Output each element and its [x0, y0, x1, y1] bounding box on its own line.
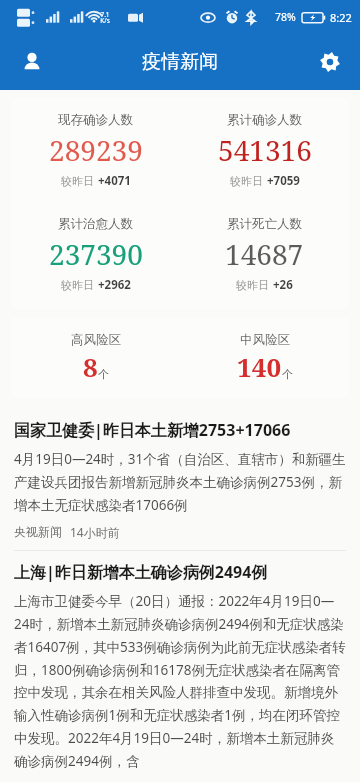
staticText: 14687: [225, 235, 304, 273]
staticText: 个: [98, 367, 109, 381]
staticText: +2962: [98, 277, 131, 293]
button[interactable]: 国家卫健委|昨日本土新增2753+17066: [0, 409, 360, 550]
staticText: 237390: [49, 235, 143, 273]
button[interactable]: 现存确诊人数: [11, 98, 349, 309]
staticText: +26: [273, 277, 293, 293]
staticText: 国家卫健委|昨日本土新增2753+17066: [14, 419, 291, 441]
staticText: 上海市卫健委今早（20日）通报：2022年4月19日0—24时，新增本土新冠肺炎…: [14, 592, 346, 770]
staticText: 较昨日: [61, 174, 94, 188]
staticText: 8:22: [330, 10, 352, 25]
staticText: 现存确诊人数: [58, 112, 133, 128]
staticText: 高风险区: [71, 332, 121, 348]
staticText: 289239: [49, 131, 143, 169]
staticText: 78%: [275, 10, 296, 24]
staticText: 较昨日: [230, 174, 263, 188]
button[interactable]: Account: [12, 42, 52, 82]
staticText: 140: [237, 349, 282, 384]
staticText: 疫情新闻: [142, 50, 218, 74]
staticText: 541316: [218, 131, 312, 169]
staticText: 14小时前: [70, 524, 120, 540]
staticText: 个: [282, 367, 293, 381]
staticText: 央视新闻: [14, 524, 62, 539]
staticText: +7059: [267, 173, 300, 189]
staticText: 8: [83, 349, 98, 384]
staticText: 较昨日: [61, 278, 94, 292]
staticText: 较昨日: [236, 278, 269, 292]
button[interactable]: 上海|昨日新增本土确诊病例2494例: [0, 551, 360, 782]
staticText: 累计死亡人数: [227, 216, 302, 232]
staticText: 7.1 K/s: [100, 10, 110, 25]
staticText: +4071: [98, 173, 131, 189]
staticText: 4月19日0—24时，31个省（自治区、直辖市）和新疆生产建设兵团报告新增新冠肺…: [14, 450, 346, 514]
staticText: 累计治愈人数: [58, 216, 133, 232]
staticText: 上海|昨日新增本土确诊病例2494例: [14, 561, 268, 583]
staticText: 累计确诊人数: [227, 112, 302, 128]
button[interactable]: 高风险区: [11, 318, 349, 398]
staticText: 中风险区: [240, 332, 290, 348]
button[interactable]: Settings: [310, 42, 350, 82]
